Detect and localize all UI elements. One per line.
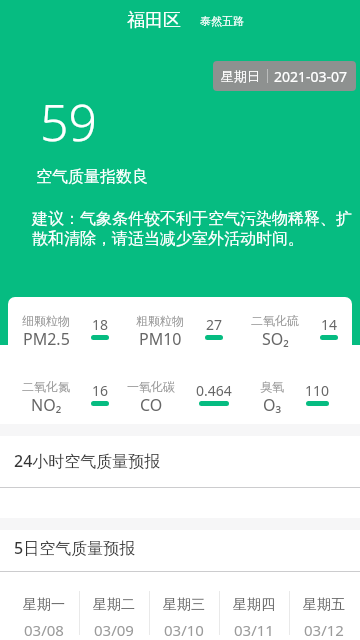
staticText: 星期四 xyxy=(233,596,275,614)
staticText: 星期三 xyxy=(163,596,205,614)
staticText: 03/10 xyxy=(164,620,204,640)
staticText: 2021-03-07 xyxy=(274,67,348,86)
button[interactable]: 二氧化氮 xyxy=(8,379,122,416)
button[interactable]: 星期四 xyxy=(219,596,289,640)
staticText: 03/12 xyxy=(304,620,344,640)
staticText: 建议：气象条件较不利于空气污染物稀释、扩散和清除，请适当减少室外活动时间。 xyxy=(32,209,353,249)
button[interactable]: 星期二 xyxy=(79,596,149,640)
staticText: 03/11 xyxy=(234,620,274,640)
button[interactable]: 星期一 xyxy=(9,596,79,640)
staticText: 星期二 xyxy=(93,596,135,614)
staticText: O₃ xyxy=(263,394,282,416)
staticText: 星期一 xyxy=(23,596,65,614)
button[interactable]: 二氧化硫 xyxy=(237,313,352,350)
staticText: 03/09 xyxy=(94,620,134,640)
staticText: 二氧化硫 xyxy=(251,313,299,328)
staticText: 星期日 xyxy=(221,68,260,84)
staticText: NO₂ xyxy=(31,394,62,416)
button[interactable]: 臭氧 xyxy=(237,379,352,416)
staticText: CO xyxy=(140,394,163,416)
button[interactable]: 粗颗粒物 xyxy=(122,313,237,350)
staticText: 59 xyxy=(40,88,98,156)
staticText: 14 xyxy=(321,315,338,334)
button[interactable]: 细颗粒物 xyxy=(8,313,122,350)
staticText: PM10 xyxy=(139,328,182,350)
staticText: 16 xyxy=(92,381,109,400)
staticText: 18 xyxy=(92,315,109,334)
staticText: 细颗粒物 xyxy=(22,313,70,328)
staticText: 福田区 xyxy=(127,9,181,32)
button[interactable]: 星期五 xyxy=(289,596,359,640)
button[interactable]: 一氧化碳 xyxy=(122,379,237,416)
staticText: 0.464 xyxy=(196,381,232,400)
staticText: PM2.5 xyxy=(23,328,70,350)
staticText: 110 xyxy=(305,381,330,400)
staticText: 一氧化碳 xyxy=(127,379,175,394)
staticText: SO₂ xyxy=(262,328,289,350)
staticText: 粗颗粒物 xyxy=(136,313,184,328)
staticText: 5日空气质量预报 xyxy=(14,537,136,559)
staticText: 27 xyxy=(206,315,223,334)
staticText: 臭氧 xyxy=(260,379,284,394)
button[interactable]: 福田区 xyxy=(127,9,244,32)
staticText: 二氧化氮 xyxy=(22,379,70,394)
staticText: 空气质量指数良 xyxy=(36,167,148,187)
staticText: 星期五 xyxy=(303,596,345,614)
staticText: 泰然五路 xyxy=(200,14,244,28)
staticText: 03/08 xyxy=(24,620,64,640)
button[interactable]: 星期日 xyxy=(213,61,356,91)
staticText: 24小时空气质量预报 xyxy=(14,450,161,472)
button[interactable]: 星期三 xyxy=(149,596,219,640)
